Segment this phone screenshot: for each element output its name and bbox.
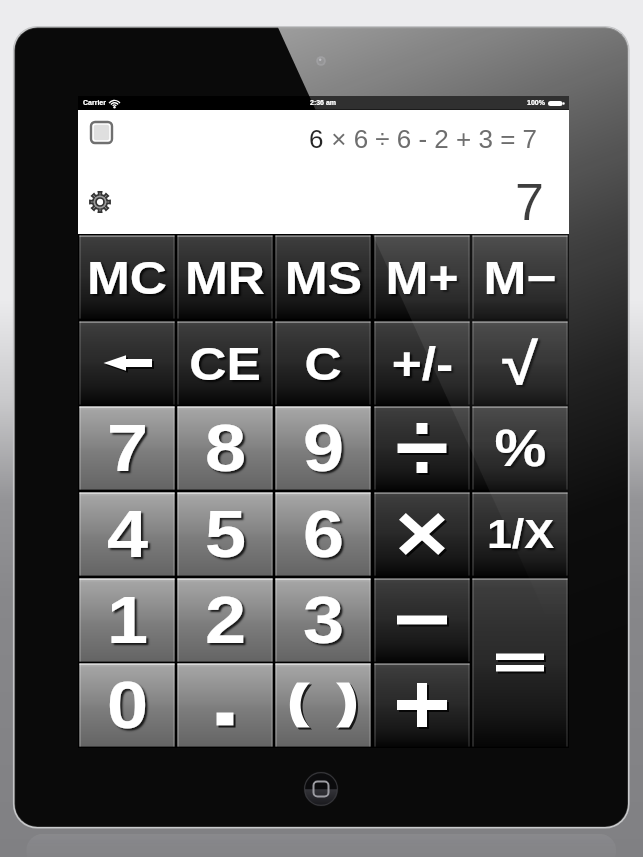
- button[interactable]: CE: [176, 320, 274, 406]
- button[interactable]: Multiply: [373, 491, 471, 577]
- staticText: √: [502, 331, 538, 396]
- button[interactable]: 3: [274, 577, 372, 663]
- button[interactable]: 0: [78, 662, 176, 748]
- staticText: MC: [87, 252, 167, 303]
- staticText: MS: [285, 252, 362, 303]
- button[interactable]: 2: [176, 577, 274, 663]
- staticText: M+: [385, 252, 459, 303]
- staticText: × 6 ÷ 6 - 2 + 3 = 7: [324, 124, 538, 153]
- staticText: 2:36 am: [310, 99, 337, 107]
- staticText: CE: [189, 338, 261, 389]
- staticText: 0: [107, 668, 148, 742]
- button[interactable]: Plus: [373, 662, 471, 748]
- staticText: 2: [205, 583, 246, 657]
- staticText: 6: [303, 497, 344, 571]
- button[interactable]: √: [471, 320, 569, 406]
- button[interactable]: Settings: [89, 191, 111, 213]
- staticText: M−: [483, 252, 557, 303]
- button[interactable]: Decimal point: [176, 662, 274, 748]
- button[interactable]: 6: [274, 491, 372, 577]
- button[interactable]: 5: [176, 491, 274, 577]
- staticText: 1: [107, 583, 148, 657]
- staticText: +/-: [392, 338, 453, 389]
- button[interactable]: 7: [78, 405, 176, 491]
- button[interactable]: Parentheses: [274, 662, 372, 748]
- button[interactable]: 9: [274, 405, 372, 491]
- staticText: 100%: [527, 99, 545, 107]
- staticText: %: [494, 419, 547, 477]
- button[interactable]: Backspace: [78, 320, 176, 406]
- button[interactable]: 4: [78, 491, 176, 577]
- button[interactable]: Select: [91, 122, 112, 143]
- staticText: 9: [303, 411, 344, 485]
- staticText: 1/X: [486, 512, 555, 557]
- button[interactable]: M+: [373, 234, 471, 320]
- staticText: 5: [205, 497, 246, 571]
- staticText: 6: [309, 124, 324, 153]
- staticText: 3: [303, 583, 344, 657]
- button[interactable]: 1/X: [471, 491, 569, 577]
- staticText: 8: [205, 411, 246, 485]
- staticText: 4: [107, 497, 148, 571]
- button[interactable]: +/-: [373, 320, 471, 406]
- button[interactable]: 1: [78, 577, 176, 663]
- staticText: MR: [185, 252, 265, 303]
- staticText: 7: [107, 411, 148, 485]
- button[interactable]: MC: [78, 234, 176, 320]
- button[interactable]: MS: [274, 234, 372, 320]
- button[interactable]: %: [471, 405, 569, 491]
- button[interactable]: MR: [176, 234, 274, 320]
- button[interactable]: 8: [176, 405, 274, 491]
- button[interactable]: M−: [471, 234, 569, 320]
- button[interactable]: Equals: [471, 577, 569, 748]
- staticText: C: [304, 338, 342, 389]
- staticText: 7: [515, 173, 544, 231]
- button[interactable]: C: [274, 320, 372, 406]
- staticText: Carrier: [83, 99, 106, 107]
- button[interactable]: Minus: [373, 577, 471, 663]
- button[interactable]: Divide: [373, 405, 471, 491]
